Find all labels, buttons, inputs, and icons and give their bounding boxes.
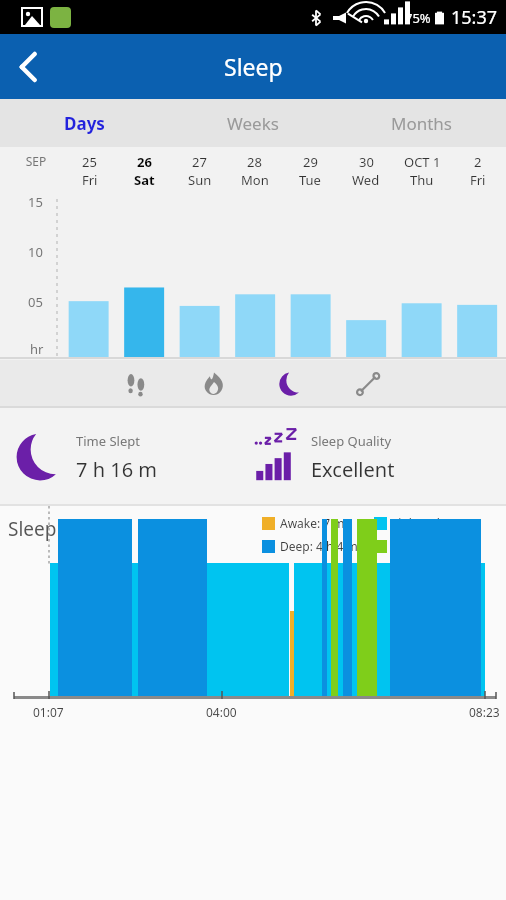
button[interactable]: 2 [450, 153, 506, 189]
button[interactable]: 26 [117, 153, 172, 189]
staticText: Fri [470, 171, 486, 189]
button[interactable]: REM: 25 m [374, 538, 494, 554]
staticText: 08:23 [469, 704, 500, 720]
button[interactable]: Time Slept [0, 408, 253, 506]
button[interactable]: Light: 2 h 40 m [374, 515, 494, 531]
staticText: 30 [359, 153, 374, 171]
button[interactable]: Awake: 7 m [262, 515, 374, 531]
staticText: Tue [299, 171, 321, 189]
staticText: 04:00 [206, 704, 237, 720]
staticText: Deep: 4 h 4 m [280, 538, 358, 554]
staticText: hr [30, 340, 44, 358]
button[interactable]: 30 [338, 153, 394, 189]
staticText: 29 [303, 153, 318, 171]
staticText: Excellent [311, 456, 395, 483]
button[interactable]: Sleep Quality [253, 408, 506, 506]
button[interactable]: 27 [172, 153, 227, 189]
button[interactable]: Back [0, 39, 56, 95]
button[interactable]: Deep: 4 h 4 m [262, 538, 374, 554]
staticText: Sleep [8, 516, 57, 542]
staticText: 25 [82, 153, 97, 171]
button[interactable]: Steps [100, 360, 176, 408]
staticText: Time Slept [76, 432, 140, 450]
staticText: Mon [241, 171, 269, 189]
button[interactable]: Calories [176, 360, 252, 408]
staticText: Thu [410, 171, 434, 189]
staticText: 15 [28, 193, 43, 211]
staticText: 75% [405, 9, 431, 27]
staticText: 26 [137, 153, 152, 171]
staticText: 28 [247, 153, 262, 171]
staticText: Sat [134, 171, 155, 189]
staticText: 10 [28, 243, 43, 261]
staticText: Sleep [224, 51, 283, 82]
button[interactable]: Weeks [168, 99, 337, 147]
staticText: 27 [192, 153, 207, 171]
staticText: 05 [28, 293, 43, 311]
staticText: 15:37 [451, 5, 498, 30]
button[interactable]: Months [337, 99, 506, 147]
staticText: Wed [352, 171, 380, 189]
staticText: Sleep Quality [311, 432, 392, 450]
staticText: Weeks [227, 112, 279, 135]
staticText: 2 [474, 153, 482, 171]
staticText: 01:07 [33, 704, 64, 720]
staticText: OCT 1 [404, 153, 441, 171]
staticText: Days [64, 112, 105, 135]
staticText: Fri [82, 171, 98, 189]
staticText: 7 h 16 m [76, 456, 157, 483]
button[interactable]: Days [0, 99, 168, 147]
button[interactable]: Sleep [252, 360, 329, 408]
button[interactable]: Workout [329, 360, 406, 408]
staticText: Awake: 7 m [280, 515, 345, 531]
staticText: Months [391, 112, 452, 135]
button[interactable]: 28 [227, 153, 282, 189]
button[interactable]: 29 [282, 153, 338, 189]
button[interactable]: OCT 1 [394, 153, 450, 189]
staticText: SEP [10, 153, 62, 169]
staticText: Light: 2 h 40 m [392, 515, 476, 531]
staticText: Sun [188, 171, 212, 189]
button[interactable]: 25 [62, 153, 117, 189]
